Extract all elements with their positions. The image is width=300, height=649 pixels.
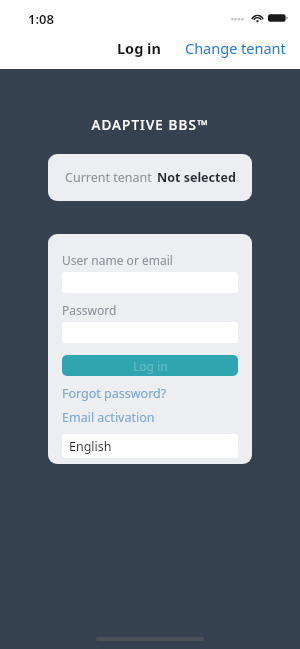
staticText: User name or email — [62, 252, 173, 268]
staticText: Change tenant — [185, 38, 286, 58]
staticText: Forgot password? — [62, 385, 167, 402]
button[interactable]: Email activation — [62, 409, 155, 426]
staticText: 1:08 — [28, 10, 54, 28]
staticText: Log in — [117, 38, 161, 58]
staticText: Email activation — [62, 409, 155, 426]
button[interactable]: Change tenant — [183, 35, 288, 61]
button[interactable]: Log in — [111, 35, 167, 61]
staticText: Log in — [133, 358, 168, 374]
staticText: English — [69, 438, 112, 455]
staticText: ADAPTIVE BBS™ — [0, 116, 300, 134]
staticText: Current tenant — [65, 169, 152, 186]
staticText: Password — [62, 302, 117, 318]
staticText: Not selected — [157, 169, 236, 186]
button[interactable]: Forgot password? — [62, 385, 167, 402]
button[interactable]: English — [62, 434, 238, 458]
button[interactable]: Current tenant — [48, 154, 252, 201]
button[interactable]: Log in — [62, 355, 238, 376]
